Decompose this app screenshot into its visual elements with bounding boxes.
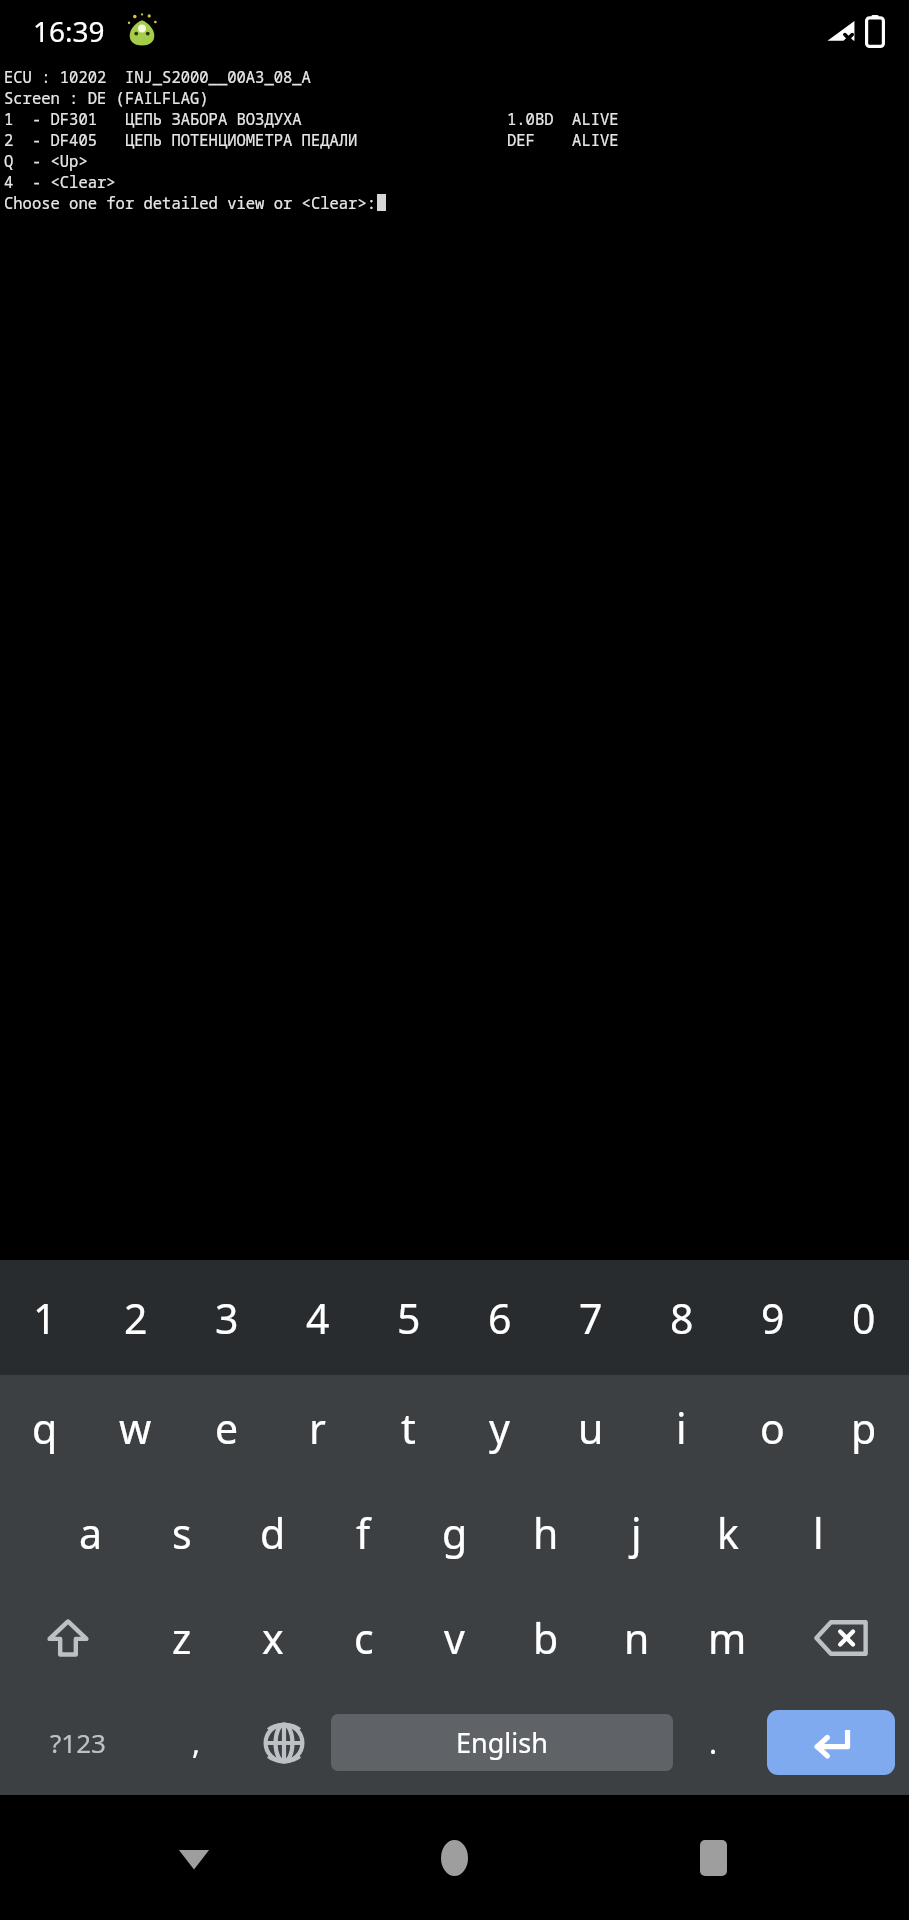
button[interactable]: g — [409, 1480, 500, 1585]
button[interactable]: b — [500, 1585, 591, 1690]
button[interactable]: t — [363, 1375, 454, 1480]
staticText: 3 — [215, 1290, 239, 1346]
staticText: x — [262, 1610, 284, 1666]
button[interactable]: Change language — [236, 1690, 331, 1795]
staticText: , — [192, 1722, 201, 1763]
button[interactable]: v — [409, 1585, 500, 1690]
button[interactable]: Backspace — [773, 1585, 909, 1690]
staticText: d — [260, 1505, 286, 1561]
staticText: b — [533, 1610, 559, 1666]
button[interactable]: i — [636, 1375, 727, 1480]
staticText: n — [624, 1610, 650, 1666]
staticText: English — [456, 1724, 548, 1761]
button[interactable]: j — [591, 1480, 682, 1585]
button[interactable]: , — [156, 1690, 236, 1795]
staticText: Screen : DE (FAILFLAG) — [4, 87, 209, 108]
staticText: j — [631, 1505, 642, 1561]
button[interactable]: e — [181, 1375, 272, 1480]
staticText: DEF ALIVE — [507, 129, 619, 150]
button[interactable]: x — [227, 1585, 318, 1690]
staticText: 1 — [33, 1290, 57, 1346]
staticText: c — [354, 1610, 374, 1666]
button[interactable]: h — [500, 1480, 591, 1585]
staticText: e — [215, 1400, 239, 1456]
staticText: y — [489, 1400, 510, 1456]
staticText: a — [79, 1505, 103, 1561]
button[interactable]: 3 — [181, 1260, 272, 1375]
staticText: Q - <Up> — [4, 150, 88, 171]
button[interactable]: 1 — [0, 1260, 90, 1375]
staticText: r — [309, 1400, 326, 1456]
staticText: p — [851, 1400, 877, 1456]
staticText: 2 - DF405 ЦЕПЬ ПОТЕНЦИОМЕТРА ПЕДАЛИ — [4, 129, 358, 150]
button[interactable]: 6 — [454, 1260, 545, 1375]
staticText: 16:39 — [33, 12, 105, 50]
button[interactable]: ?123 — [0, 1690, 156, 1795]
staticText: s — [172, 1505, 192, 1561]
button[interactable]: u — [545, 1375, 636, 1480]
button[interactable]: Back — [134, 1798, 254, 1918]
staticText: ECU : 10202 INJ_S2000__00A3_08_A — [4, 66, 311, 87]
button[interactable]: English — [331, 1714, 673, 1771]
staticText: 9 — [761, 1290, 785, 1346]
button[interactable]: o — [727, 1375, 818, 1480]
button[interactable]: s — [136, 1480, 227, 1585]
staticText: . — [709, 1722, 718, 1763]
staticText: ?123 — [50, 1725, 106, 1760]
button[interactable]: d — [227, 1480, 318, 1585]
staticText: 7 — [579, 1290, 603, 1346]
button[interactable]: . — [673, 1690, 753, 1795]
staticText: v — [444, 1610, 465, 1666]
button[interactable]: 5 — [363, 1260, 454, 1375]
staticText: g — [442, 1505, 468, 1561]
staticText: 0 — [852, 1290, 876, 1346]
button[interactable]: z — [136, 1585, 227, 1690]
button[interactable]: Enter — [767, 1710, 895, 1775]
button[interactable]: Recent apps — [653, 1798, 773, 1918]
button[interactable]: Shift — [0, 1585, 136, 1690]
staticText: 5 — [397, 1290, 421, 1346]
button[interactable]: 8 — [636, 1260, 727, 1375]
button[interactable]: w — [90, 1375, 181, 1480]
button[interactable]: l — [773, 1480, 864, 1585]
button[interactable]: 2 — [90, 1260, 181, 1375]
staticText: 4 - <Clear> — [4, 171, 116, 192]
button[interactable]: Home — [394, 1798, 514, 1918]
button[interactable]: p — [818, 1375, 909, 1480]
staticText: 2 — [124, 1290, 148, 1346]
staticText: q — [32, 1400, 58, 1456]
button[interactable]: a — [45, 1480, 136, 1585]
button[interactable]: m — [682, 1585, 773, 1690]
button[interactable]: 9 — [727, 1260, 818, 1375]
staticText: w — [119, 1400, 152, 1456]
staticText: t — [401, 1400, 416, 1456]
staticText: i — [676, 1400, 687, 1456]
button[interactable]: c — [318, 1585, 409, 1690]
staticText: h — [533, 1505, 559, 1561]
button[interactable]: n — [591, 1585, 682, 1690]
staticText: l — [813, 1505, 824, 1561]
staticText: 1 - DF301 ЦЕПЬ ЗАБОРА ВОЗДУХА — [4, 108, 302, 129]
staticText: 8 — [670, 1290, 694, 1346]
button[interactable]: f — [318, 1480, 409, 1585]
staticText: f — [356, 1505, 371, 1561]
button[interactable]: 4 — [272, 1260, 363, 1375]
button[interactable]: 7 — [545, 1260, 636, 1375]
staticText: Choose one for detailed view or <Clear>: — [4, 192, 377, 213]
staticText: z — [172, 1610, 192, 1666]
button[interactable]: 0 — [818, 1260, 909, 1375]
staticText: k — [717, 1505, 739, 1561]
staticText: u — [578, 1400, 604, 1456]
staticText: o — [760, 1400, 785, 1456]
staticText: 6 — [488, 1290, 512, 1346]
button[interactable]: q — [0, 1375, 90, 1480]
staticText: m — [708, 1610, 747, 1666]
button[interactable]: y — [454, 1375, 545, 1480]
button[interactable]: r — [272, 1375, 363, 1480]
staticText: 4 — [306, 1290, 330, 1346]
staticText: 1.0BD ALIVE — [507, 108, 619, 129]
button[interactable]: k — [682, 1480, 773, 1585]
